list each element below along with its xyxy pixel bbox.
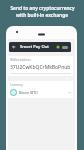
button[interactable]: Back: [9, 42, 71, 52]
other: Back: [12, 45, 16, 49]
staticText: Currency: [10, 83, 23, 87]
other: Expand: [68, 91, 71, 94]
other: Status: [56, 45, 60, 49]
staticText: 37U2CwKbQCrMkBoPnubqAp: [10, 64, 71, 71]
staticText: Smart Pay Out: [20, 44, 49, 50]
staticText: Wallet address: [10, 58, 31, 62]
button[interactable]: Currency: [8, 81, 73, 98]
staticText: Bitcoin (BTC): [19, 91, 38, 95]
button[interactable]: Wallet address: [8, 56, 73, 76]
staticText: with built-in exchange: [16, 12, 68, 19]
staticText: Send to any cryptocurrency: [10, 5, 75, 12]
